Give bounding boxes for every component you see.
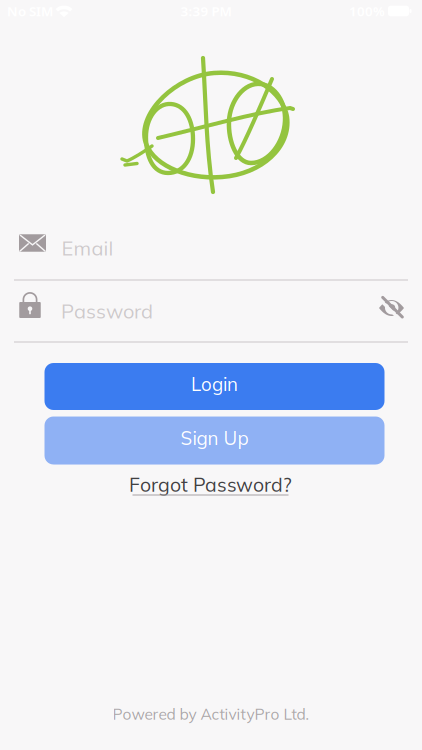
button[interactable]: Forgot Password? bbox=[133, 465, 288, 497]
button[interactable]: Show password bbox=[378, 296, 404, 319]
staticText: Sign Up bbox=[180, 426, 248, 450]
staticText: Forgot Password? bbox=[129, 472, 292, 497]
button[interactable]: Password bbox=[14, 294, 408, 342]
button[interactable]: Sign Up bbox=[44, 416, 384, 464]
staticText: Powered by ActivityPro Ltd. bbox=[112, 704, 309, 724]
staticText: Password bbox=[61, 298, 153, 324]
staticText: Email bbox=[61, 235, 113, 261]
button[interactable]: Login bbox=[44, 363, 384, 410]
button[interactable]: Email bbox=[14, 232, 408, 280]
staticText: Login bbox=[191, 372, 238, 396]
